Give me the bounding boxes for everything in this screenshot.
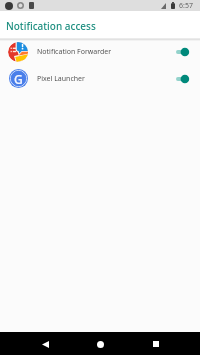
button[interactable]: G xyxy=(0,65,200,92)
staticText: 6:57 xyxy=(179,1,193,11)
staticText: G xyxy=(14,71,23,87)
staticText: Pixel Launcher xyxy=(37,74,85,84)
button[interactable]: Toggle notification access xyxy=(176,72,190,86)
button[interactable]: Notification Forwarder xyxy=(0,38,200,65)
staticText: Notification Forwarder xyxy=(37,47,112,57)
button[interactable]: Recent apps xyxy=(145,333,167,355)
button[interactable]: Toggle notification access xyxy=(176,45,190,59)
button[interactable]: Home xyxy=(89,333,111,355)
button[interactable]: Back xyxy=(34,333,56,355)
staticText: Notification access xyxy=(6,19,96,33)
